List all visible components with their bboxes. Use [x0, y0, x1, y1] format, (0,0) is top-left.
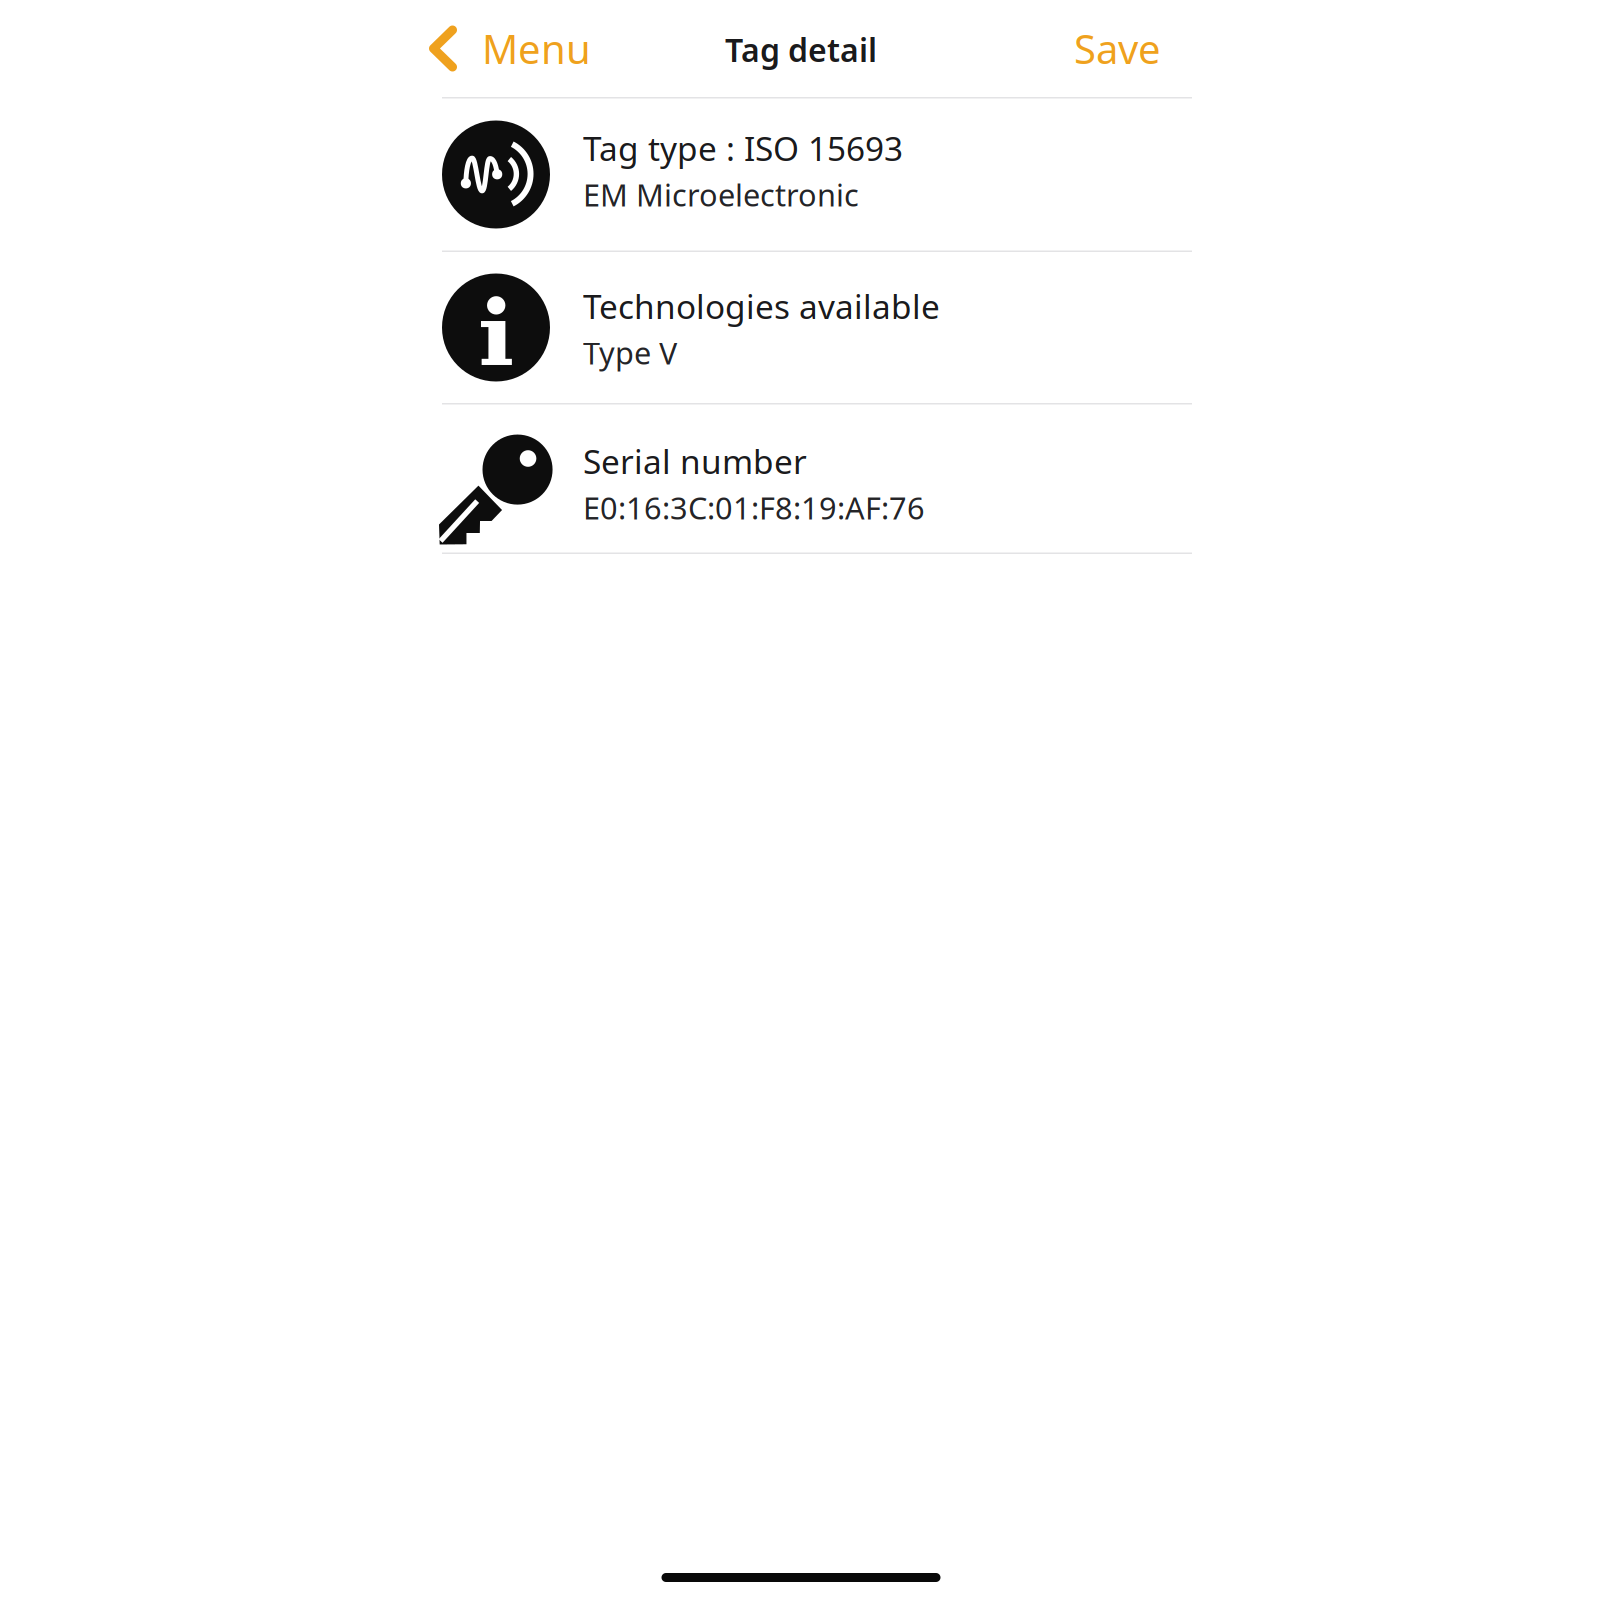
staticText: Tag detail: [725, 28, 877, 71]
button[interactable]: Save: [1105, 22, 1192, 75]
button[interactable]: Serial number: [442, 404, 1192, 554]
staticText: EM Microelectronic: [583, 174, 859, 215]
staticText: E0:16:3C:01:F8:19:AF:76: [583, 487, 925, 528]
staticText: Type V: [583, 332, 677, 373]
staticText: Save: [1074, 22, 1161, 75]
button[interactable]: Menu: [442, 22, 604, 75]
staticText: Serial number: [583, 439, 807, 483]
staticText: Menu: [482, 22, 591, 75]
button[interactable]: Technologies available: [442, 252, 1192, 404]
staticText: Tag type : ISO 15693: [583, 126, 903, 170]
staticText: Technologies available: [583, 284, 940, 328]
button[interactable]: Tag type : ISO 15693: [442, 98, 1192, 252]
